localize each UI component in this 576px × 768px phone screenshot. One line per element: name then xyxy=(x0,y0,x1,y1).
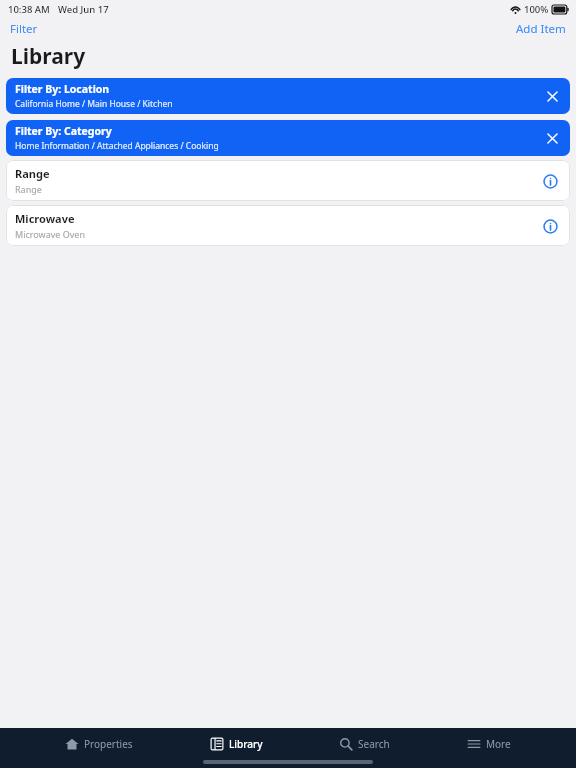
button[interactable]: Filter xyxy=(0,19,46,39)
button[interactable]: Filter By: Category xyxy=(6,120,570,156)
staticText: Range xyxy=(15,183,42,195)
button[interactable]: Search xyxy=(327,733,402,755)
staticText: More xyxy=(486,737,511,751)
staticText: Microwave xyxy=(15,211,75,226)
button[interactable]: Properties xyxy=(53,733,145,755)
button[interactable]: Range xyxy=(6,160,570,201)
button[interactable]: Remove filter xyxy=(534,120,570,156)
staticText: Add Item xyxy=(516,21,566,37)
staticText: 10:38 AM xyxy=(8,3,50,16)
staticText: Properties xyxy=(84,737,133,751)
button[interactable]: More xyxy=(455,733,523,755)
button[interactable]: Information xyxy=(530,161,570,201)
staticText: Home Information / Attached Appliances /… xyxy=(15,140,219,152)
button[interactable]: Remove filter xyxy=(534,78,570,114)
button[interactable]: Information xyxy=(530,206,570,246)
button[interactable]: Add Item xyxy=(508,19,576,39)
staticText: Library xyxy=(11,42,86,71)
button[interactable]: Library xyxy=(198,733,275,755)
staticText: Wed Jun 17 xyxy=(58,3,109,16)
staticText: Search xyxy=(358,737,390,751)
button[interactable]: Filter By: Location xyxy=(6,78,570,114)
staticText: Library xyxy=(229,737,263,751)
staticText: Microwave Oven xyxy=(15,228,85,240)
staticText: Filter By: Category xyxy=(15,124,112,138)
staticText: Filter xyxy=(10,21,38,37)
staticText: Range xyxy=(15,166,50,181)
staticText: California Home / Main House / Kitchen xyxy=(15,98,173,110)
staticText: 100% xyxy=(524,3,549,16)
staticText: Filter By: Location xyxy=(15,82,110,96)
button[interactable]: Microwave xyxy=(6,205,570,246)
